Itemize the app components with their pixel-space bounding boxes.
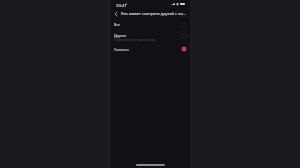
staticText: Кто может смотреть друзей с помощью виде… (121, 11, 186, 16)
button[interactable]: Только я (111, 43, 190, 54)
button[interactable]: Друзья (111, 30, 190, 43)
staticText: Только я (114, 47, 129, 52)
staticText: Все (114, 22, 120, 27)
staticText: Подписчики, на которых вы под (114, 38, 176, 42)
button[interactable]: Назад (113, 9, 119, 18)
staticText: Друзья (114, 33, 126, 38)
button[interactable]: Все (111, 19, 190, 30)
staticText: 20:41 (116, 3, 127, 9)
